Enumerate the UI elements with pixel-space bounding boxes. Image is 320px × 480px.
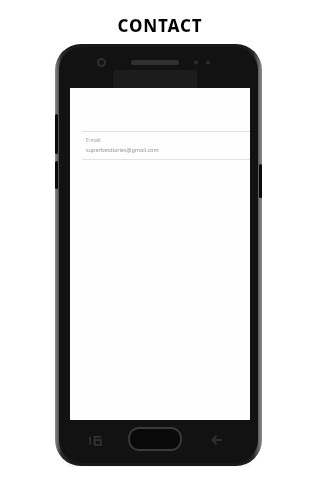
other: Volume up [55, 114, 58, 154]
staticText: CONTACT [0, 14, 320, 37]
staticText: superbetdiaries@gmail.com [86, 146, 159, 153]
other: Power [259, 164, 262, 198]
button[interactable]: E-mail [70, 132, 250, 159]
other: Volume down [55, 161, 58, 189]
button[interactable]: Back [203, 429, 229, 451]
staticText: E-mail [86, 137, 101, 144]
button[interactable]: Home [127, 426, 183, 452]
button[interactable]: Recents [82, 429, 108, 451]
